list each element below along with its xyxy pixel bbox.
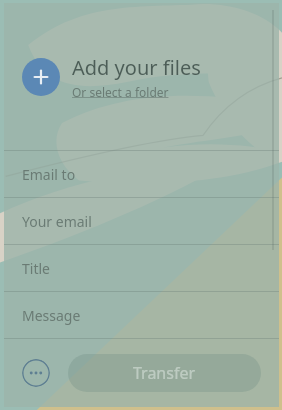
staticText: Title bbox=[22, 259, 50, 278]
button[interactable]: More options bbox=[22, 359, 50, 387]
staticText: Message bbox=[22, 306, 81, 325]
staticText: Add your files bbox=[72, 54, 201, 81]
button[interactable]: Title bbox=[4, 245, 279, 291]
button[interactable]: Add files bbox=[4, 3, 279, 150]
button[interactable]: Message bbox=[4, 292, 279, 338]
button[interactable]: Email to bbox=[4, 151, 279, 197]
staticText: Email to bbox=[22, 165, 76, 184]
button[interactable]: Transfer bbox=[68, 354, 261, 392]
staticText: Transfer bbox=[133, 362, 196, 384]
button[interactable]: Your email bbox=[4, 198, 279, 244]
button[interactable]: Or select a folder bbox=[72, 84, 169, 100]
button[interactable]: Add files bbox=[22, 58, 60, 96]
staticText: Your email bbox=[22, 212, 92, 231]
